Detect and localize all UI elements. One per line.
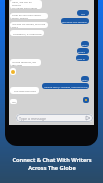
button[interactable]: How is that? [76,55,89,61]
button[interactable]: What do you think about what I writer? [10,13,48,19]
staticText: Wonderful, is a personal [13,32,42,35]
staticText: Connect & Chat With Writers Across The G… [12,156,92,171]
button[interactable]: not what you getting to get? [61,18,89,24]
staticText: That's great [78,50,88,53]
staticText: not what you getting to get? [62,20,88,23]
button[interactable]: yes [77,10,89,16]
staticText: okay [82,78,88,81]
staticText: Type a message [19,116,46,121]
button[interactable]: Emoji message [10,68,16,75]
button[interactable]: Yes and I'm myself, all to the story [10,22,48,28]
button[interactable]: That's great [77,48,89,54]
button[interactable]: Hello, are you an author? I'm afraid wha… [10,0,42,9]
staticText: yes [81,12,85,15]
button[interactable]: Type a message [16,114,93,122]
button[interactable]: Wonderful, is a personal [10,30,44,36]
button[interactable]: The new one! Here [10,87,39,94]
staticText: And be faithfully, we feel how [12,60,39,66]
button[interactable]: Emoji message [83,97,89,103]
button[interactable]: okay [81,41,89,47]
staticText: Having prior, I reading, narrow to me [44,85,88,88]
button[interactable]: Having prior, I reading, narrow to me [42,83,89,89]
staticText: okay [82,43,88,46]
button[interactable]: hm [10,99,17,104]
staticText: Yes and I'm myself, all to the story [12,22,46,28]
staticText: The new one! Here [14,89,36,92]
button[interactable]: And be faithfully, we feel how [10,59,41,66]
staticText: How is that? [77,57,88,60]
button[interactable]: Send [85,115,91,121]
button[interactable]: okay [81,76,89,82]
staticText: What do you think about what I writer? [12,13,46,19]
staticText: hm [12,100,16,103]
staticText: Hello, are you an author? I'm afraid wha… [12,0,40,9]
